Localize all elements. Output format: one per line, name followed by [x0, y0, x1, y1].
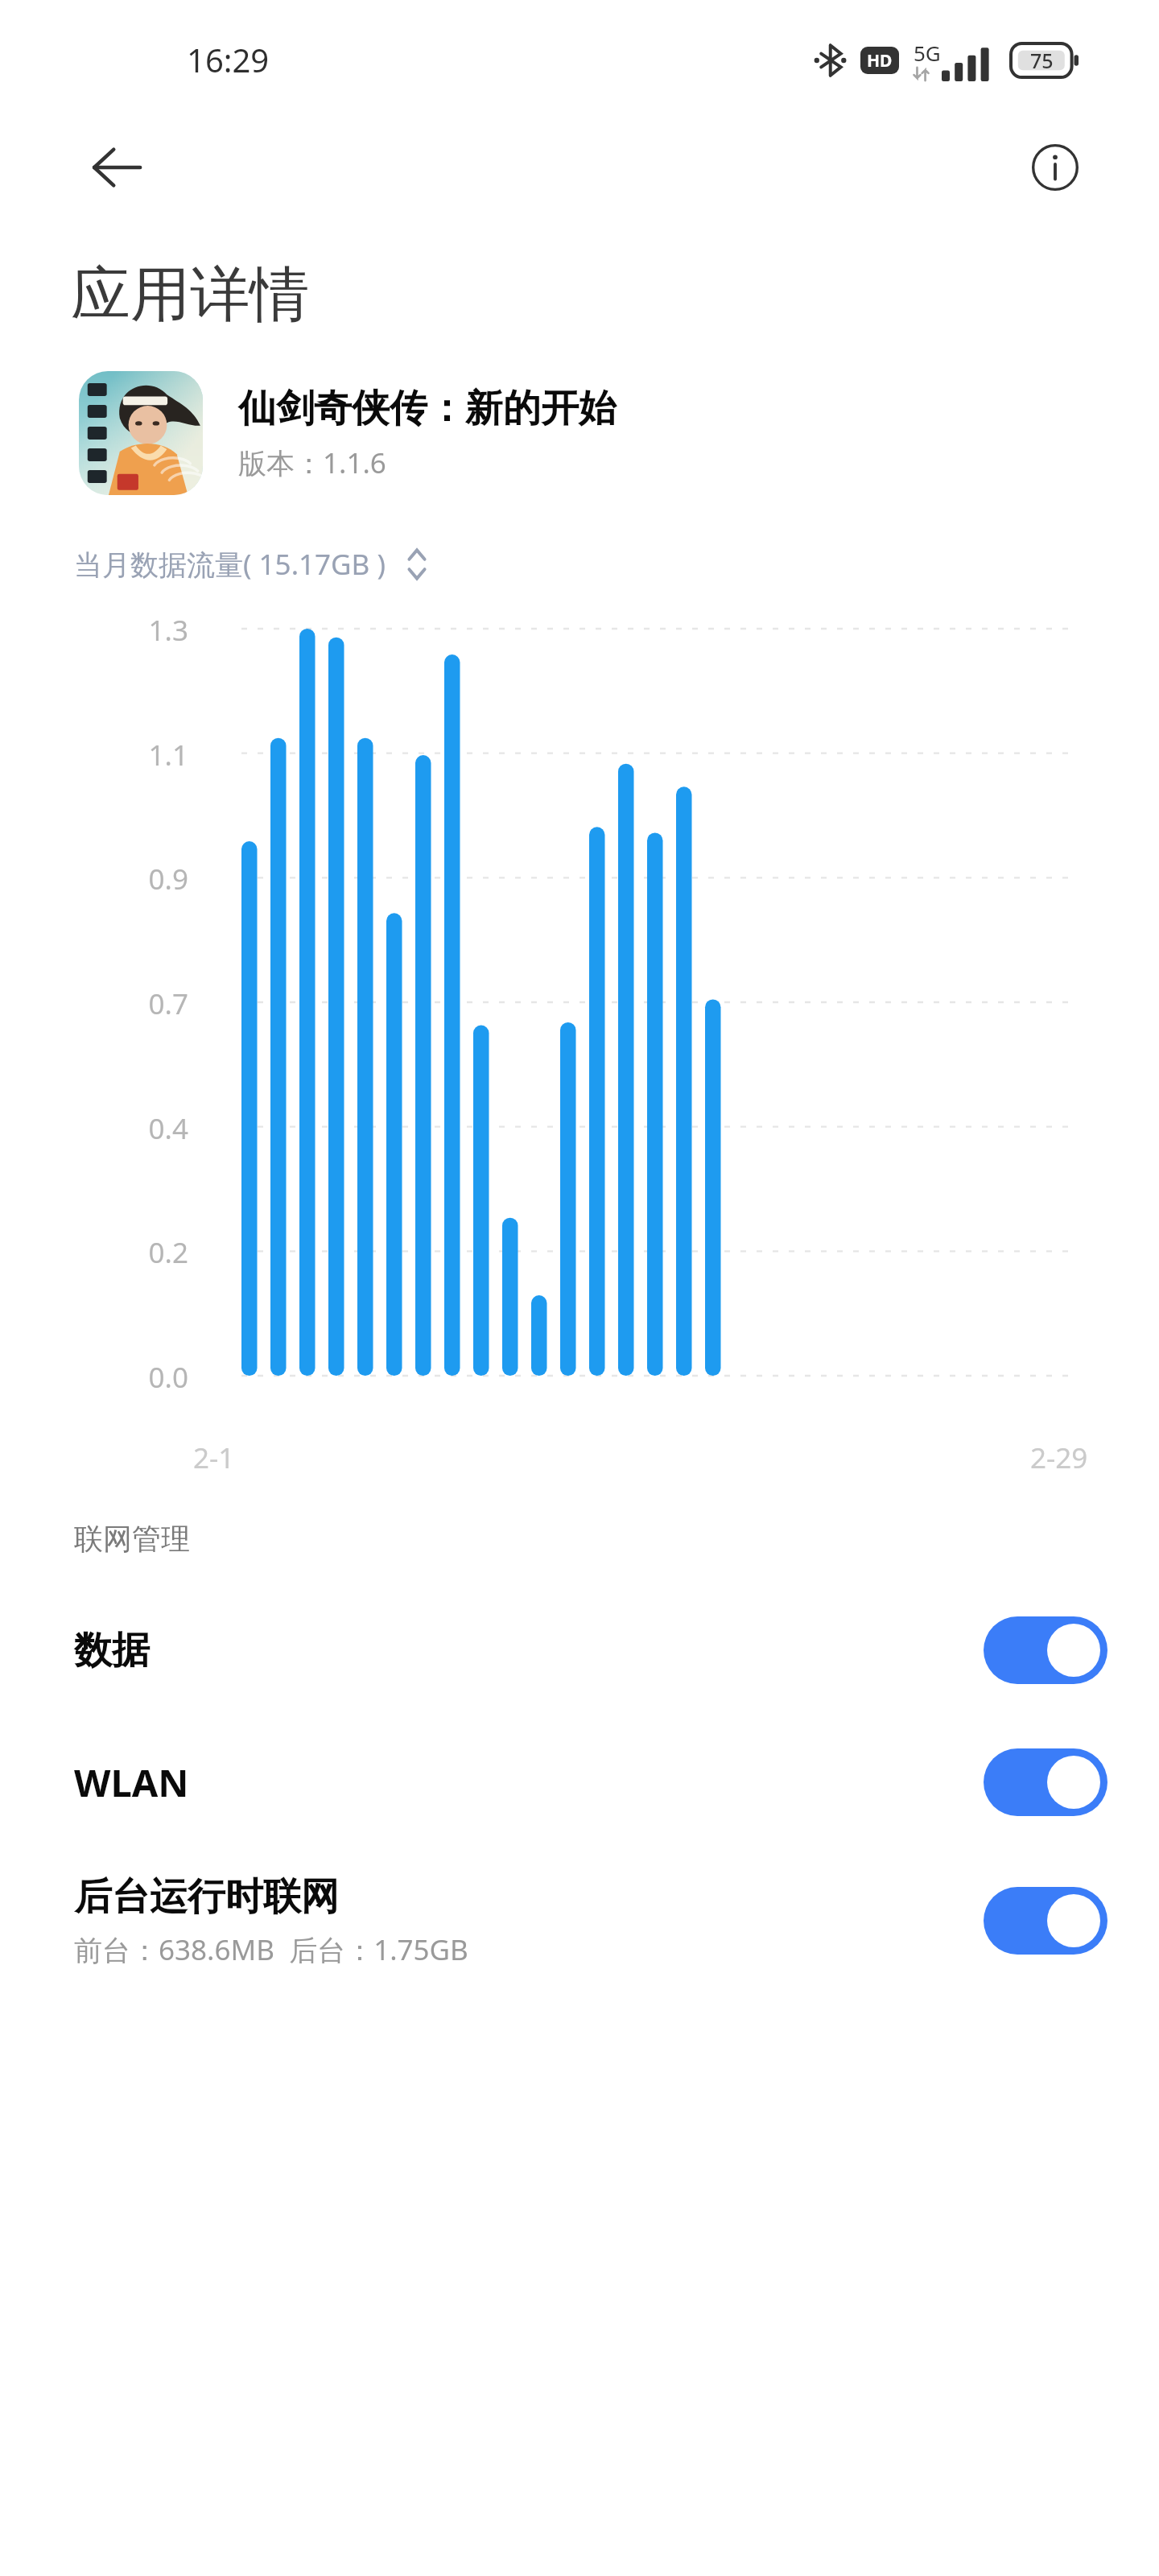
- button[interactable]: Toggle on: [984, 1748, 1107, 1816]
- staticText: 5G: [914, 39, 941, 67]
- staticText: 0.4: [121, 1109, 188, 1145]
- staticText: 0.2: [121, 1233, 188, 1269]
- staticText: 联网管理: [74, 1521, 190, 1557]
- button[interactable]: 数据: [0, 1584, 1159, 1716]
- staticText: 后台运行时联网: [74, 1873, 339, 1921]
- staticText: 0.0: [121, 1358, 188, 1393]
- button[interactable]: WLAN: [0, 1716, 1159, 1848]
- button[interactable]: 当月数据流量( 15.17GB ): [0, 545, 461, 584]
- button[interactable]: Toggle on: [984, 1616, 1107, 1684]
- staticText: 数据: [74, 1627, 150, 1674]
- staticText: 2-1: [193, 1439, 235, 1477]
- staticText: 版本：1.1.6: [238, 444, 386, 482]
- staticText: 应用详情: [71, 258, 309, 332]
- button[interactable]: Toggle on: [984, 1887, 1107, 1955]
- staticText: 仙剑奇侠传：新的开始: [238, 385, 617, 432]
- button[interactable]: 仙剑奇侠传：新的开始: [0, 371, 1159, 495]
- button[interactable]: Back: [69, 120, 164, 215]
- staticText: 0.7: [121, 985, 188, 1020]
- staticText: 2-29: [1030, 1439, 1088, 1477]
- button[interactable]: 后台运行时联网: [0, 1848, 1159, 1993]
- staticText: 75: [1030, 47, 1054, 74]
- staticText: WLAN: [74, 1757, 189, 1808]
- staticText: 1.3: [121, 611, 188, 646]
- button[interactable]: Info: [1008, 120, 1103, 215]
- staticText: 前台：638.6MB 后台：1.75GB: [74, 1930, 468, 1969]
- staticText: 16:29: [187, 38, 270, 81]
- staticText: 0.9: [121, 860, 188, 895]
- staticText: 1.1: [121, 736, 188, 771]
- staticText: HD: [867, 49, 893, 72]
- staticText: 当月数据流量( 15.17GB ): [74, 545, 386, 584]
